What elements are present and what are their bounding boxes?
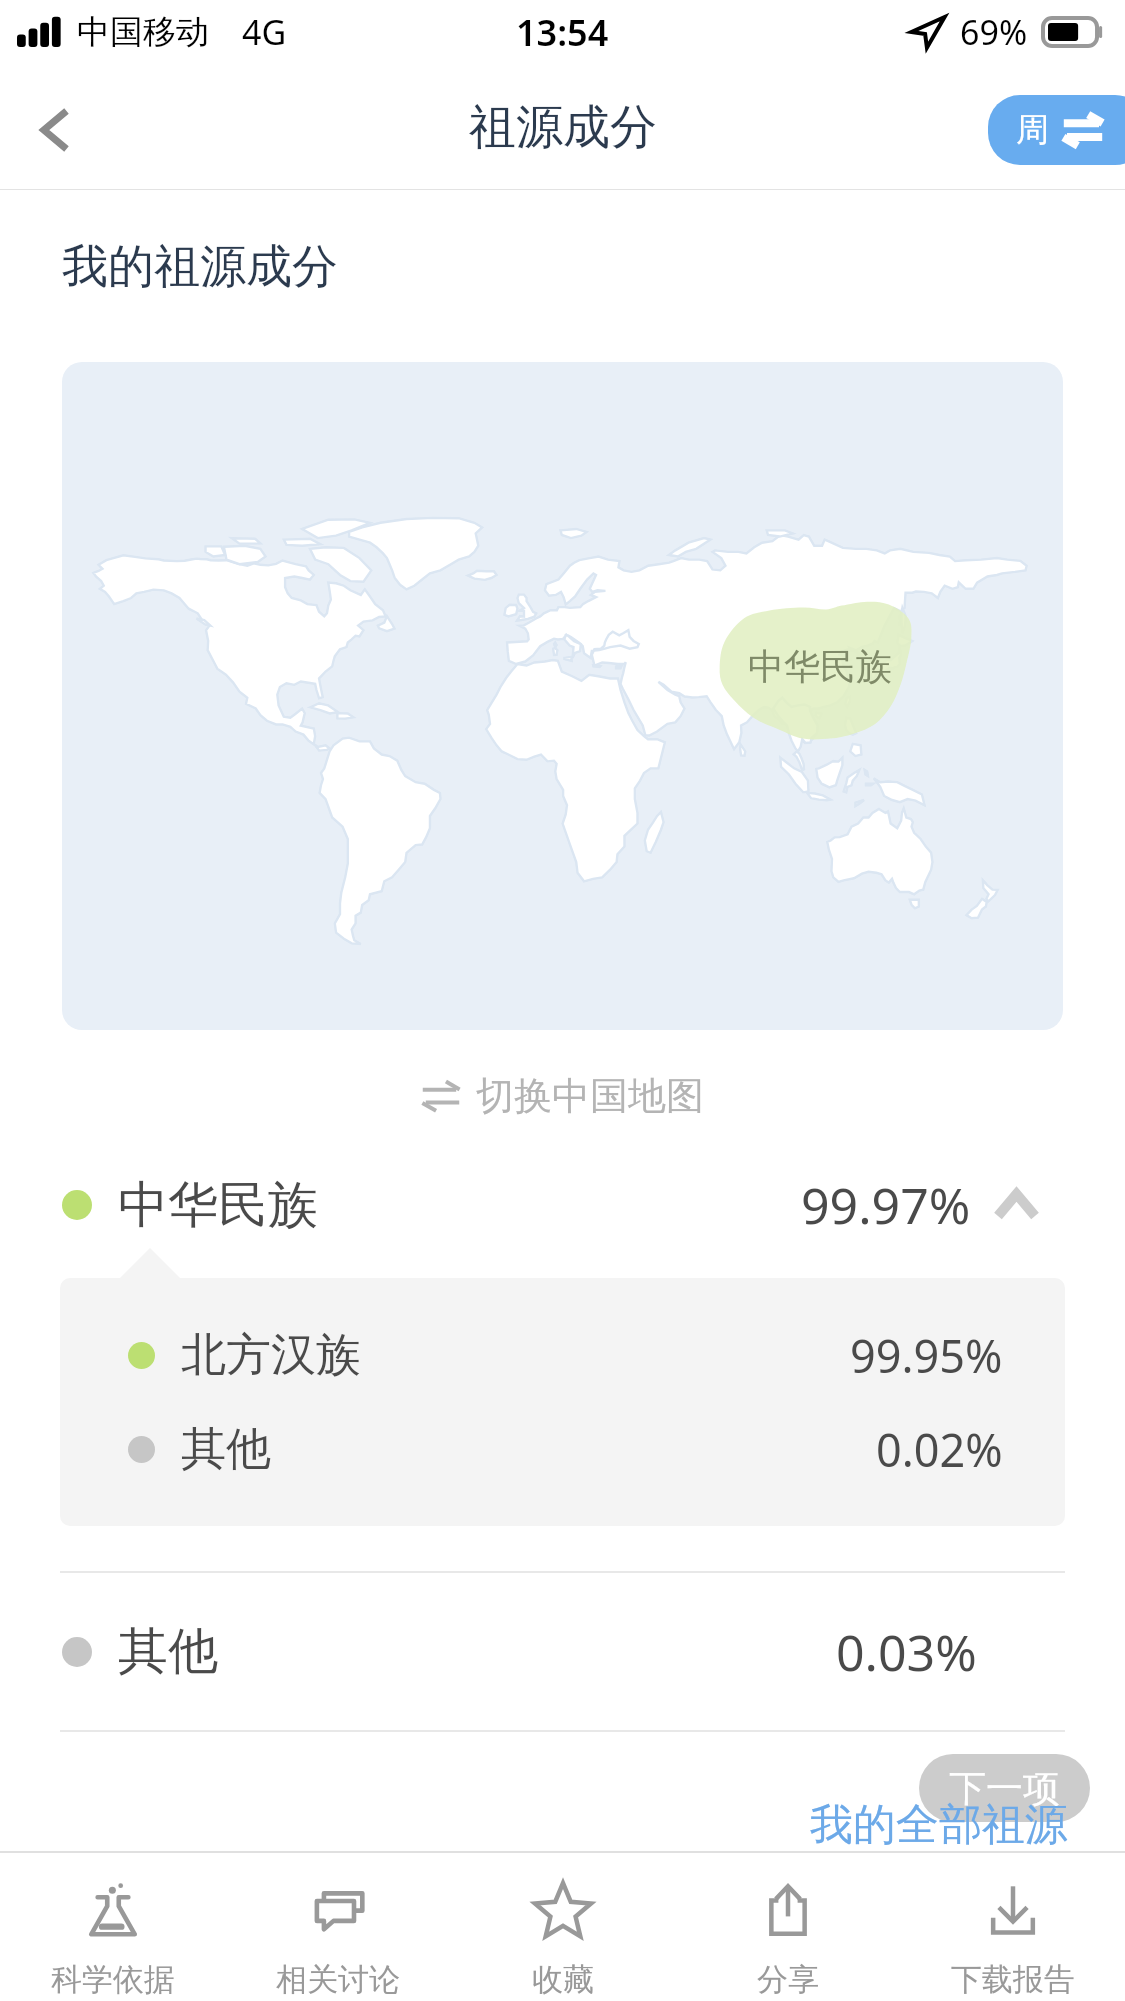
- staticText: 下载报告: [951, 1960, 1075, 1999]
- button[interactable]: 收藏: [450, 1853, 675, 2001]
- staticText: 切换中国地图: [476, 1072, 704, 1120]
- button[interactable]: 周: [988, 95, 1125, 165]
- staticText: 科学依据: [51, 1960, 175, 1999]
- button[interactable]: 我的全部祖源: [810, 1798, 1068, 1852]
- button[interactable]: 相关讨论: [225, 1853, 450, 2001]
- staticText: 99.97%: [801, 1171, 971, 1239]
- staticText: 中国移动: [77, 11, 209, 53]
- staticText: 其他: [118, 1620, 218, 1683]
- staticText: 99.95%: [850, 1325, 1003, 1386]
- staticText: 0.02%: [876, 1419, 1003, 1480]
- staticText: 下一项: [949, 1765, 1060, 1812]
- staticText: 分享: [757, 1960, 819, 1999]
- button[interactable]: 分享: [675, 1853, 900, 2001]
- staticText: 相关讨论: [276, 1960, 400, 1999]
- staticText: 周: [1016, 109, 1049, 151]
- button[interactable]: 北方汉族: [60, 1308, 1065, 1402]
- staticText: 其他: [181, 1421, 271, 1478]
- button[interactable]: 中华民族: [62, 362, 1063, 1030]
- staticText: 中华民族: [748, 644, 892, 689]
- staticText: 69%: [960, 9, 1028, 55]
- button[interactable]: 其他: [0, 1573, 1125, 1730]
- button[interactable]: 返回: [10, 85, 100, 175]
- staticText: 4G: [242, 9, 287, 55]
- staticText: 北方汉族: [181, 1327, 361, 1384]
- staticText: 13:54: [516, 8, 609, 57]
- button[interactable]: 科学依据: [0, 1853, 225, 2001]
- button[interactable]: 其他: [60, 1402, 1065, 1496]
- staticText: 我的祖源成分: [62, 238, 338, 296]
- button[interactable]: 下载报告: [900, 1853, 1125, 2001]
- button[interactable]: 切换中国地图: [412, 1066, 714, 1126]
- button[interactable]: 中华民族: [0, 1162, 1125, 1248]
- staticText: 收藏: [532, 1960, 594, 1999]
- staticText: 中华民族: [118, 1174, 318, 1237]
- staticText: 0.03%: [836, 1618, 977, 1686]
- staticText: 祖源成分: [469, 98, 657, 157]
